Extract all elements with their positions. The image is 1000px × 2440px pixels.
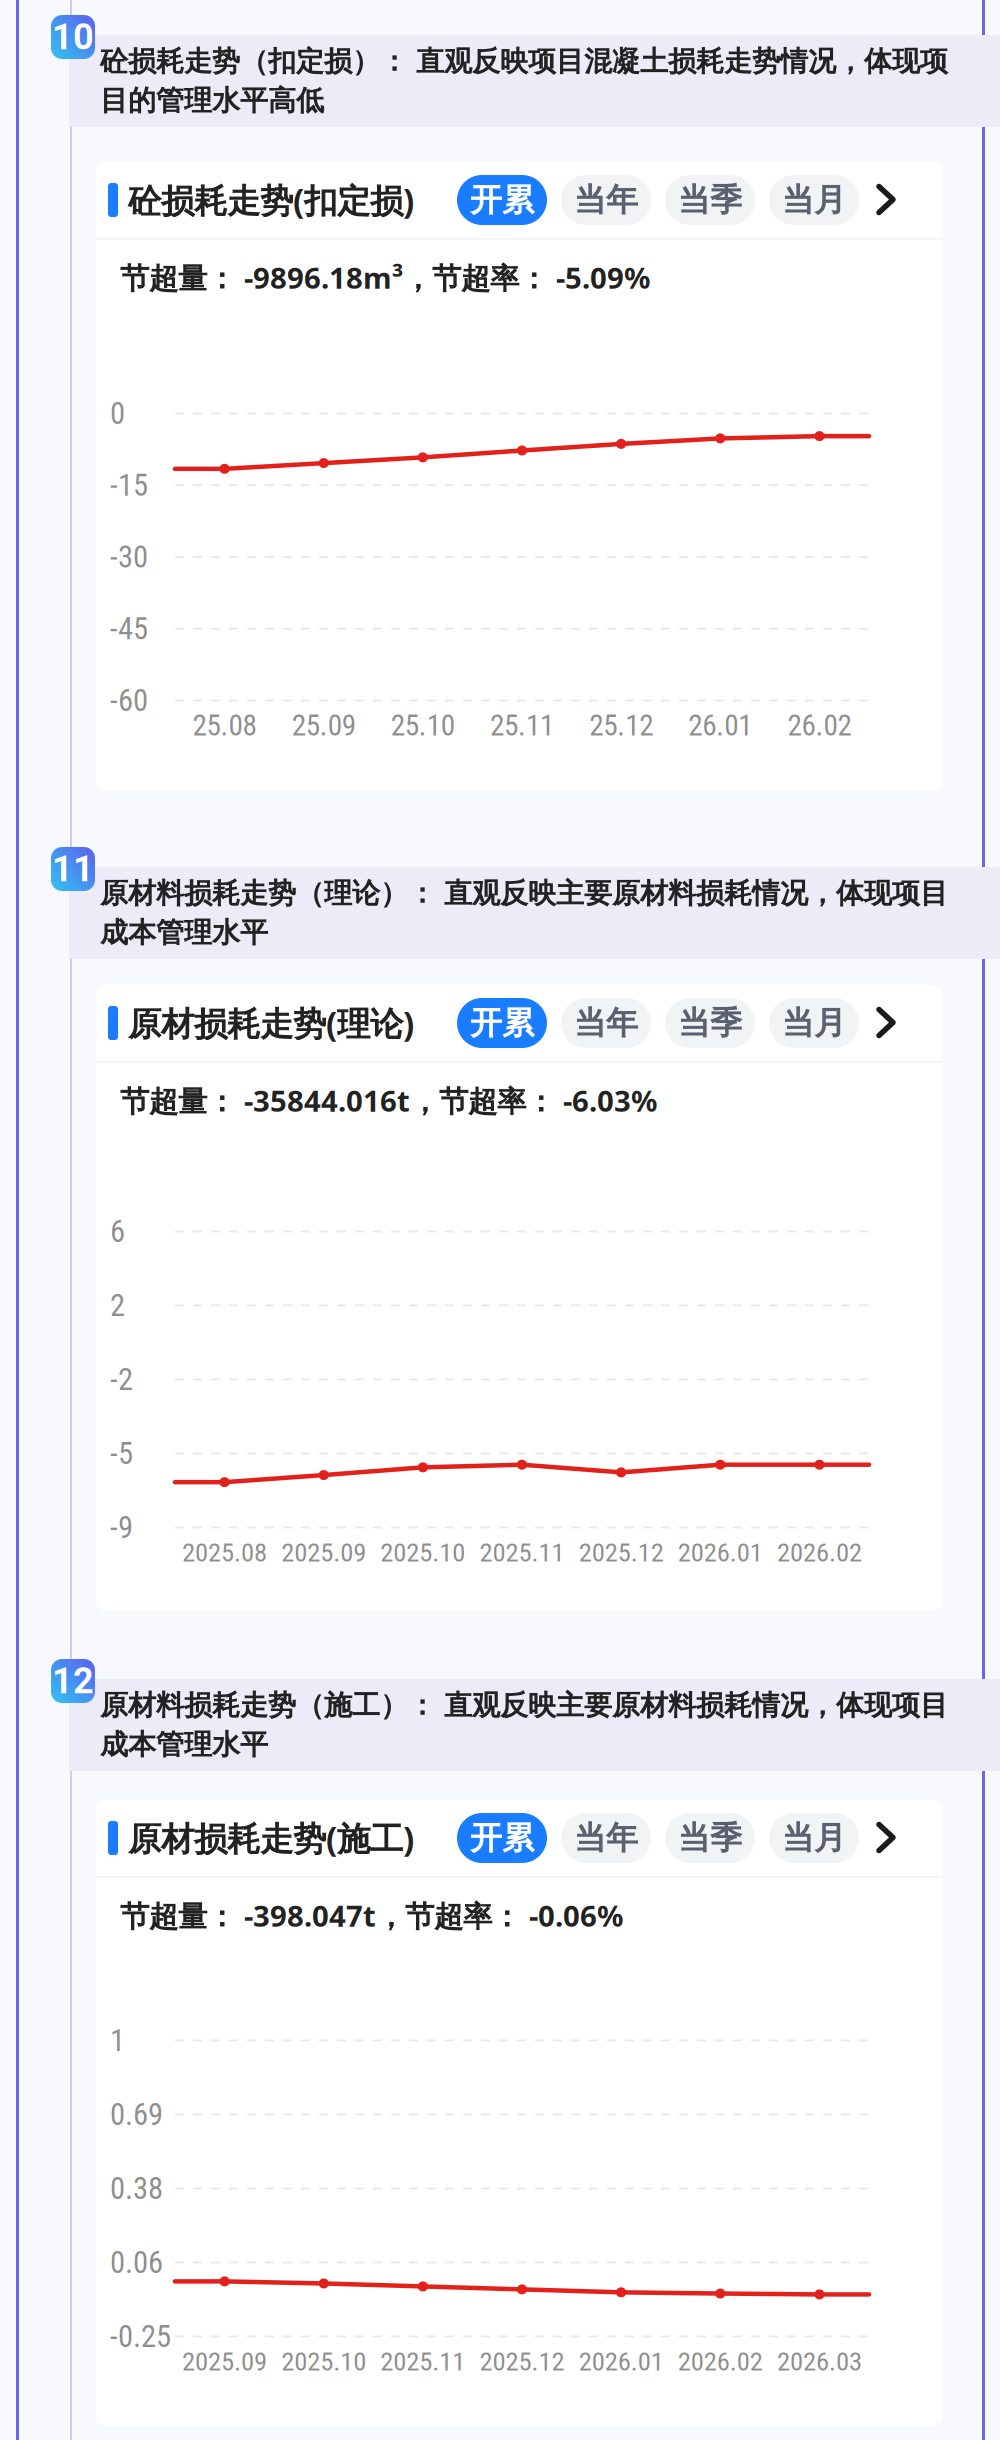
staticText: -2 — [110, 1361, 133, 1397]
staticText: 原材料损耗走势（施工）： 直观反映主要原材料损耗情况，体现项目 — [100, 1688, 948, 1723]
staticText: 当季 — [678, 1818, 742, 1858]
staticText: 25.12 — [589, 708, 653, 743]
staticText: 成本管理水平 — [100, 1727, 268, 1762]
staticText: 0.69 — [110, 2096, 163, 2132]
staticText: 25.10 — [391, 708, 455, 743]
staticText: 当年 — [574, 1818, 638, 1858]
staticText: 2025.09 — [182, 2346, 267, 2377]
staticText: 1 — [110, 2022, 125, 2058]
staticText: -30 — [110, 539, 148, 575]
staticText: 11 — [52, 848, 94, 890]
staticText: 成本管理水平 — [100, 915, 268, 950]
staticText: 0.38 — [110, 2170, 163, 2206]
button[interactable]: 当年 — [561, 998, 651, 1048]
staticText: 25.09 — [292, 708, 356, 743]
staticText: 26.01 — [688, 708, 752, 743]
button[interactable]: 当季 — [665, 175, 755, 225]
staticText: 2025.08 — [182, 1537, 267, 1568]
button[interactable]: 原材损耗走势(施工) — [96, 1800, 942, 1876]
button[interactable]: 当月 — [769, 998, 859, 1048]
button[interactable]: 当年 — [561, 1813, 651, 1863]
staticText: -45 — [110, 611, 148, 647]
button[interactable]: 原材损耗走势(理论) — [96, 985, 942, 1061]
staticText: 当季 — [678, 180, 742, 220]
staticText: 原材损耗走势(施工) — [128, 1815, 414, 1861]
staticText: -9 — [110, 1509, 133, 1545]
button[interactable]: 当月 — [769, 175, 859, 225]
staticText: 2026.02 — [678, 2346, 763, 2377]
staticText: 6 — [110, 1213, 125, 1249]
staticText: 原材料损耗走势（理论）： 直观反映主要原材料损耗情况，体现项目 — [100, 876, 948, 911]
staticText: 12 — [52, 1660, 94, 1702]
staticText: 2025.11 — [380, 2346, 465, 2377]
staticText: 开累 — [470, 1818, 534, 1858]
button[interactable]: 当月 — [769, 1813, 859, 1863]
staticText: 当季 — [678, 1003, 742, 1043]
button[interactable]: 开累 — [457, 998, 547, 1048]
staticText: 0.06 — [110, 2244, 163, 2280]
staticText: 节超量： -9896.18m³，节超率： -5.09% — [120, 257, 650, 297]
button[interactable]: 开累 — [457, 1813, 547, 1863]
button[interactable]: 砼损耗走势(扣定损) — [96, 162, 942, 238]
button[interactable]: 开累 — [457, 175, 547, 225]
staticText: 10 — [52, 16, 94, 58]
staticText: 0 — [110, 395, 125, 431]
staticText: 目的管理水平高低 — [100, 83, 324, 118]
staticText: -5 — [110, 1435, 133, 1471]
staticText: 当年 — [574, 180, 638, 220]
staticText: 2025.12 — [479, 2346, 564, 2377]
staticText: -60 — [110, 682, 148, 718]
staticText: 当月 — [782, 1003, 846, 1043]
button[interactable]: 当年 — [561, 175, 651, 225]
staticText: 砼损耗走势（扣定损）： 直观反映项目混凝土损耗走势情况，体现项 — [100, 44, 948, 79]
staticText: 2025.10 — [380, 1537, 465, 1568]
staticText: 节超量： -35844.016t，节超率： -6.03% — [120, 1080, 657, 1120]
staticText: 2026.02 — [777, 1537, 862, 1568]
staticText: -15 — [110, 467, 148, 503]
staticText: 当月 — [782, 180, 846, 220]
button[interactable]: 当季 — [665, 1813, 755, 1863]
staticText: 2025.10 — [281, 2346, 366, 2377]
staticText: 26.02 — [787, 708, 851, 743]
staticText: 原材损耗走势(理论) — [128, 1000, 414, 1046]
staticText: 2 — [110, 1287, 125, 1323]
staticText: 节超量： -398.047t，节超率： -0.06% — [120, 1895, 623, 1935]
staticText: 2025.09 — [281, 1537, 366, 1568]
staticText: 砼损耗走势(扣定损) — [128, 177, 414, 223]
staticText: 2026.01 — [579, 2346, 664, 2377]
staticText: 2025.12 — [579, 1537, 664, 1568]
staticText: 2026.03 — [777, 2346, 862, 2377]
staticText: 2026.01 — [678, 1537, 763, 1568]
staticText: 开累 — [470, 180, 534, 220]
staticText: 25.08 — [193, 708, 257, 743]
staticText: 2025.11 — [479, 1537, 564, 1568]
staticText: -0.25 — [110, 2318, 171, 2354]
button[interactable]: 当季 — [665, 998, 755, 1048]
staticText: 开累 — [470, 1003, 534, 1043]
staticText: 当年 — [574, 1003, 638, 1043]
staticText: 25.11 — [490, 708, 554, 743]
staticText: 当月 — [782, 1818, 846, 1858]
